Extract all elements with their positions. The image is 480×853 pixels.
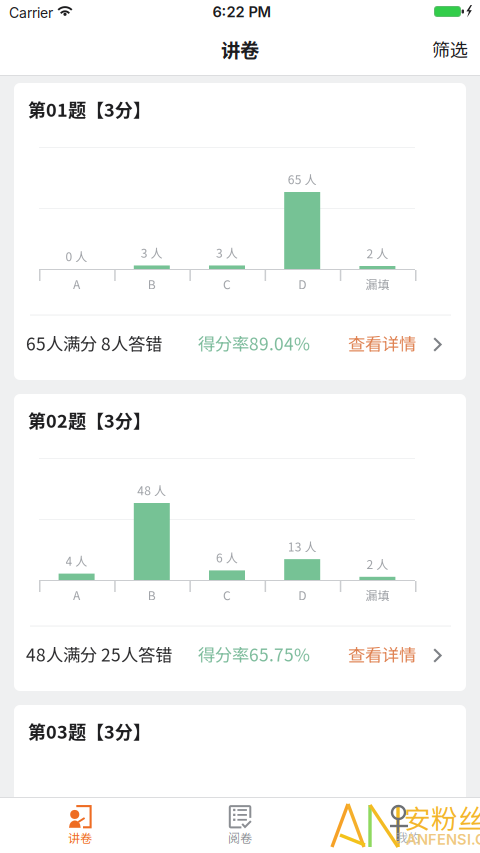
staticText: 讲卷	[68, 829, 92, 846]
staticText: 65 人	[288, 170, 317, 188]
staticText: 0 人	[66, 247, 88, 265]
staticText: 3 人	[216, 244, 238, 261]
staticText: B	[148, 275, 156, 293]
staticText: 漏填	[365, 586, 389, 604]
staticText: 第02题【3分】	[28, 407, 151, 433]
button[interactable]: 讲卷	[0, 798, 160, 853]
staticText: 6:22 PM	[212, 3, 271, 21]
staticText: A	[73, 275, 80, 293]
staticText: 6 人	[216, 549, 238, 566]
staticText: A	[73, 586, 80, 604]
staticText: D	[298, 586, 306, 604]
staticText: 得分率89.04%	[198, 330, 310, 356]
staticText: 得分率65.75%	[198, 641, 310, 667]
button[interactable]: 阅卷	[160, 798, 320, 853]
staticText: 2 人	[366, 244, 388, 262]
staticText: 漏填	[365, 275, 389, 293]
staticText: 第03题【3分】	[28, 718, 151, 744]
staticText: 13 人	[288, 537, 317, 555]
staticText: 48 人	[137, 481, 166, 499]
staticText: B	[148, 586, 156, 604]
staticText: C	[223, 586, 231, 604]
staticText: 3 人	[141, 244, 163, 261]
staticText: C	[223, 275, 231, 293]
staticText: 第01题【3分】	[28, 96, 151, 122]
staticText: 安粉丝	[404, 798, 480, 836]
staticText: Carrier	[9, 4, 53, 21]
staticText: 筛选	[432, 36, 468, 62]
staticText: 2 人	[366, 555, 388, 572]
button[interactable]: 48人满分 25人答错	[14, 628, 466, 691]
staticText: 查看详情	[348, 641, 416, 667]
staticText: 阅卷	[228, 829, 252, 846]
staticText: 48人满分 25人答错	[26, 641, 172, 667]
staticText: 讲卷	[221, 35, 259, 63]
button[interactable]: 65人满分 8人答错	[14, 317, 466, 380]
staticText: 4 人	[66, 552, 88, 569]
staticText: D	[298, 275, 306, 293]
staticText: 查看详情	[348, 330, 416, 356]
staticText: 65人满分 8人答错	[26, 330, 162, 356]
staticText: 我的	[396, 828, 420, 846]
button[interactable]: 筛选	[418, 32, 480, 66]
staticText: ANFENSI.COM	[406, 831, 480, 848]
